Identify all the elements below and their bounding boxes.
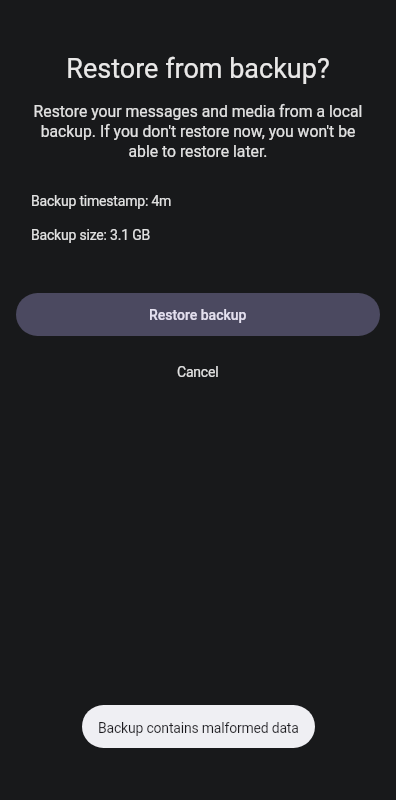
staticText: Restore your messages and media from a l…	[24, 102, 372, 160]
button[interactable]: Restore backup	[16, 293, 380, 336]
button[interactable]: Cancel	[153, 352, 243, 392]
staticText: Backup contains malformed data	[98, 720, 299, 736]
staticText: Cancel	[177, 364, 219, 380]
staticText: Restore from backup?	[16, 53, 380, 85]
staticText: Restore backup	[149, 307, 247, 323]
staticText: Backup size: 3.1 GB	[31, 227, 151, 243]
staticText: Backup timestamp: 4m	[31, 193, 172, 209]
